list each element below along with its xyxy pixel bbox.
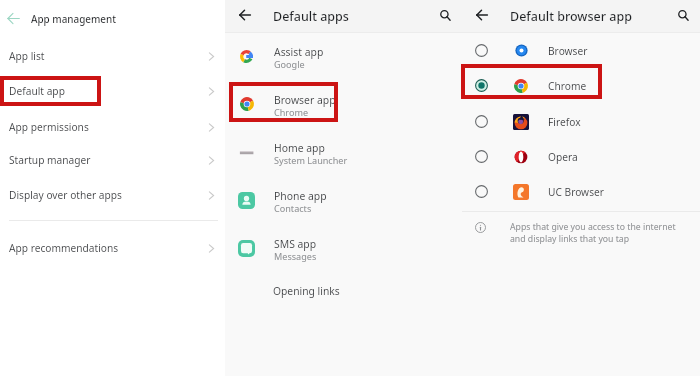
staticText: App management	[31, 12, 117, 25]
button[interactable]: Chrome	[462, 73, 700, 98]
staticText: App recommendations	[9, 241, 119, 255]
staticText: Home app	[274, 141, 325, 155]
button[interactable]: Search	[667, 0, 700, 32]
staticText: Browser app	[274, 93, 336, 107]
button[interactable]: Back	[462, 0, 496, 32]
staticText: App permissions	[9, 120, 89, 134]
staticText: Phone app	[274, 189, 327, 203]
button[interactable]: Browser	[462, 38, 700, 63]
button[interactable]: App list	[0, 43, 225, 69]
staticText: Default app	[9, 84, 65, 98]
staticText: Default apps	[273, 8, 349, 25]
staticText: Assist app	[274, 45, 324, 59]
button[interactable]: Back	[0, 0, 27, 36]
staticText: Browser	[548, 44, 588, 58]
staticText: UC Browser	[548, 185, 604, 199]
staticText: Default browser app	[510, 8, 632, 25]
button[interactable]: Default app	[0, 78, 225, 104]
button[interactable]: Phone app	[225, 188, 462, 216]
staticText: System Launcher	[274, 154, 348, 166]
staticText: SMS app	[274, 237, 317, 251]
staticText: Chrome	[274, 106, 309, 118]
staticText: Opera	[548, 150, 578, 164]
button[interactable]: App recommendations	[0, 235, 225, 261]
staticText: Apps that give you access to the interne…	[510, 221, 676, 245]
button[interactable]: Browser app	[225, 92, 462, 120]
button[interactable]: UC Browser	[462, 179, 700, 204]
staticText: Display over other apps	[9, 188, 122, 202]
button[interactable]: Assist app	[225, 44, 462, 72]
button[interactable]: App permissions	[0, 114, 225, 140]
button[interactable]: Display over other apps	[0, 182, 225, 208]
button[interactable]: Home app	[225, 140, 462, 168]
button[interactable]: Back	[0, 0, 225, 36]
button[interactable]: Search	[429, 0, 462, 32]
staticText: Startup manager	[9, 153, 91, 167]
staticText: App list	[9, 49, 45, 63]
staticText: Google	[274, 58, 305, 70]
button[interactable]: Opera	[462, 144, 700, 169]
staticText: Messages	[274, 250, 317, 262]
button[interactable]: Startup manager	[0, 147, 225, 173]
staticText: Opening links	[273, 284, 340, 298]
button[interactable]: SMS app	[225, 236, 462, 264]
button[interactable]: Firefox	[462, 109, 700, 134]
staticText: Chrome	[548, 79, 587, 93]
staticText: Contacts	[274, 202, 312, 214]
button[interactable]: Back	[225, 0, 259, 32]
button[interactable]: Opening links	[225, 280, 462, 302]
staticText: Firefox	[548, 115, 581, 129]
